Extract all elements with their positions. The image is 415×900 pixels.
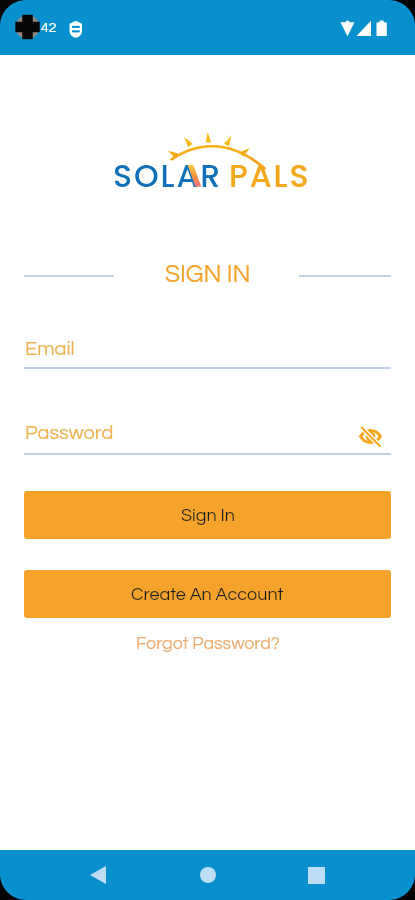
staticText: Email [25,339,75,360]
staticText: Sign In [181,506,235,525]
button[interactable]: Recents [292,851,340,899]
button[interactable]: Home [184,851,232,899]
button[interactable]: Back [74,851,122,899]
staticText: Password [25,423,114,444]
staticText: 42 [41,21,57,35]
staticText: PALS [229,154,311,198]
button[interactable]: Create An Account [24,570,391,618]
button[interactable]: Forgot Password? [130,632,286,654]
staticText: Create An Account [131,585,284,604]
button[interactable]: Sign In [24,491,391,539]
button[interactable]: Toggle password visibility [355,421,385,451]
staticText: SIGN IN [165,262,251,287]
staticText: SOLAR [113,154,223,198]
